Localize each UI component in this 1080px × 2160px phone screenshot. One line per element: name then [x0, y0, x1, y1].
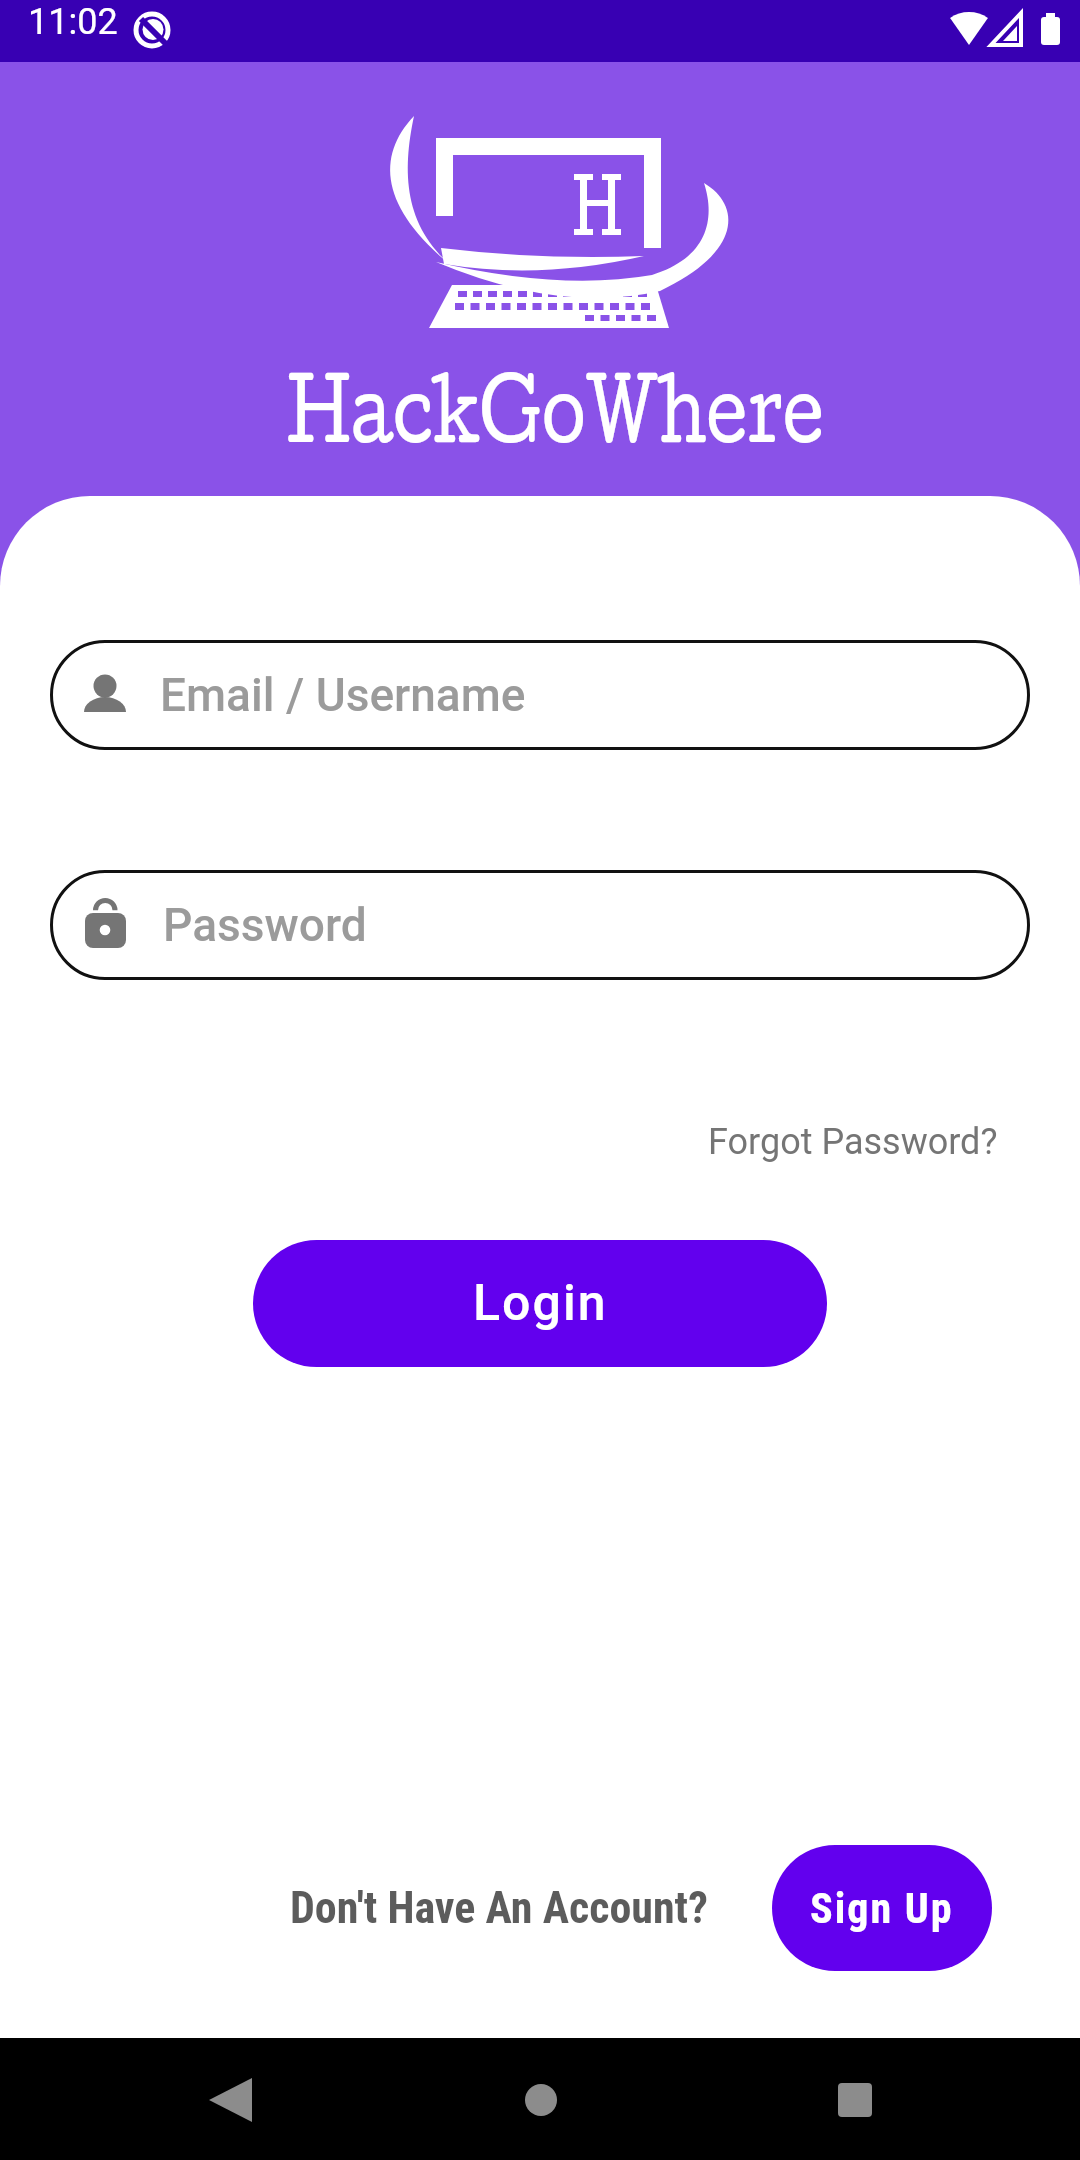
staticText: Password	[163, 898, 367, 952]
staticText: Login	[473, 1274, 608, 1333]
staticText: 11:02	[28, 1, 118, 43]
button[interactable]	[165, 2056, 295, 2144]
button[interactable]: Password	[50, 870, 1030, 980]
button[interactable]: Sign Up	[772, 1845, 992, 1971]
button[interactable]	[497, 2056, 627, 2144]
staticText: Email / Username	[160, 668, 526, 722]
staticText: Sign Up	[810, 1884, 954, 1933]
staticText: Don't Have An Account?	[290, 1882, 708, 1934]
button[interactable]	[790, 2056, 920, 2144]
button[interactable]: Login	[253, 1240, 827, 1367]
staticText: HackGoWhere	[287, 354, 824, 461]
button[interactable]: Forgot Password?	[708, 1121, 998, 1163]
button[interactable]: Email / Username	[50, 640, 1030, 750]
